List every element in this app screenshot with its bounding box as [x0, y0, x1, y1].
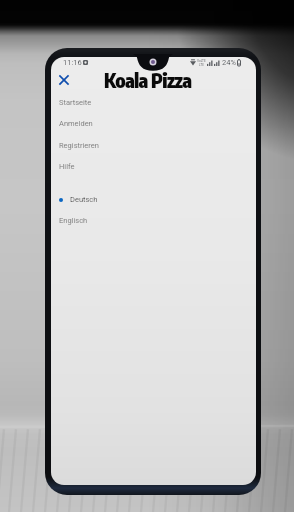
- button[interactable]: Hilfe: [51, 156, 256, 177]
- button[interactable]: Anmelden: [51, 113, 256, 134]
- button[interactable]: Englisch: [51, 210, 256, 231]
- staticText: VoLTE: [197, 59, 206, 63]
- button[interactable]: Registrieren: [51, 135, 256, 156]
- staticText: Anmelden: [59, 119, 93, 128]
- staticText: LTE: [199, 63, 205, 67]
- staticText: 11:16: [63, 58, 82, 67]
- button[interactable]: Startseite: [51, 92, 256, 113]
- staticText: Registrieren: [59, 141, 99, 150]
- staticText: Hilfe: [59, 162, 75, 171]
- button[interactable]: Close menu: [54, 70, 74, 90]
- staticText: Deutsch: [70, 195, 98, 204]
- staticText: Koala Pizza: [104, 68, 192, 92]
- staticText: Englisch: [59, 216, 88, 225]
- staticText: 24%: [222, 58, 236, 67]
- staticText: Startseite: [59, 98, 92, 107]
- button[interactable]: Deutsch: [55, 189, 256, 210]
